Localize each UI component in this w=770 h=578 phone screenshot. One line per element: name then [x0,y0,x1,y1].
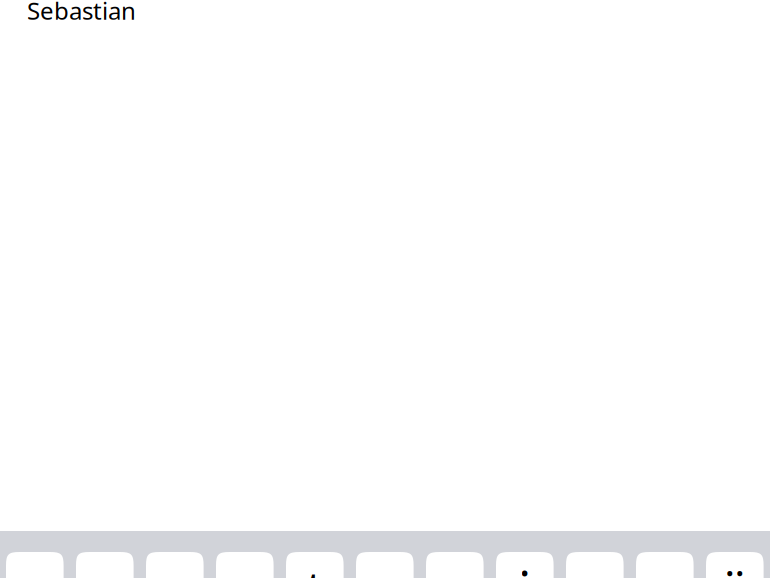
button[interactable]: r [216,552,274,578]
button[interactable]: p [636,552,694,578]
button[interactable]: z [356,552,414,578]
staticText: i [518,553,532,578]
button[interactable]: e [146,552,204,578]
button[interactable]: i [496,552,554,578]
button[interactable]: u [426,552,484,578]
button[interactable]: ü [706,552,764,578]
staticText: t [305,553,324,578]
staticText: ü [718,553,751,578]
button[interactable]: o [566,552,624,578]
button[interactable]: t [286,552,344,578]
button[interactable]: w [76,552,134,578]
button[interactable]: q [6,552,64,578]
staticText: Sebastian [27,0,136,26]
